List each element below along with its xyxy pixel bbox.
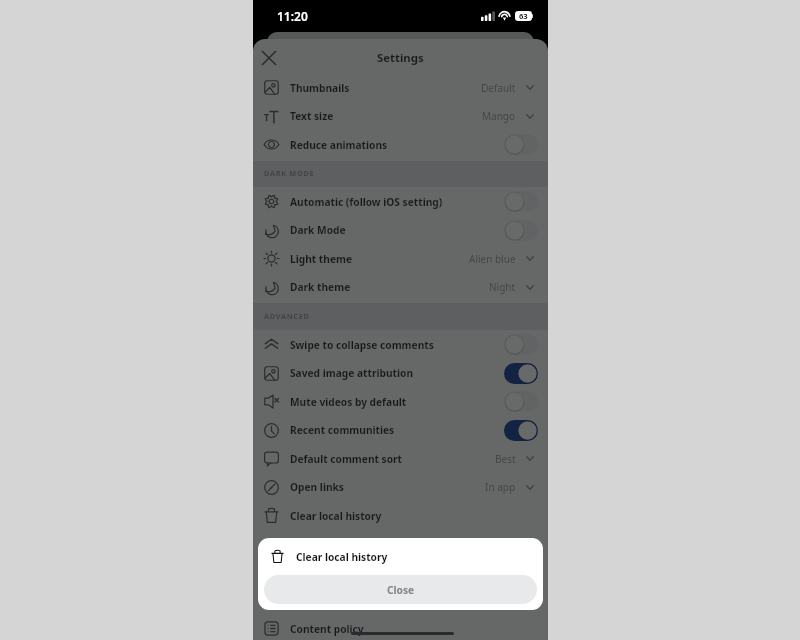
button[interactable]: Dark Mode xyxy=(253,216,548,244)
button[interactable]: Dark theme xyxy=(253,273,548,301)
staticText: Automatic (follow iOS setting) xyxy=(290,195,443,209)
button[interactable]: Recent communities xyxy=(253,416,548,444)
button[interactable]: On xyxy=(504,420,538,441)
staticText: Settings xyxy=(377,50,424,66)
staticText: In app xyxy=(485,480,516,494)
button[interactable]: Clear local history xyxy=(253,501,548,530)
button[interactable]: Thumbnails xyxy=(253,73,548,102)
staticText: Dark Mode xyxy=(290,223,346,237)
staticText: Best xyxy=(495,452,516,466)
staticText: Thumbnails xyxy=(290,81,350,95)
button[interactable]: Swipe to collapse comments xyxy=(253,330,548,359)
staticText: Text size xyxy=(290,109,334,123)
button[interactable]: Default comment sort xyxy=(253,444,548,473)
staticText: Mute videos by default xyxy=(290,395,407,409)
staticText: 11:20 xyxy=(277,8,308,24)
staticText: Mango xyxy=(482,109,516,123)
staticText: DARK MODE xyxy=(264,168,315,178)
staticText: Close xyxy=(387,583,415,597)
staticText: Dark theme xyxy=(290,280,351,294)
staticText: Default xyxy=(481,81,516,95)
staticText: Light theme xyxy=(290,252,353,266)
button[interactable]: Mute videos by default xyxy=(253,387,548,416)
staticText: Content policy xyxy=(290,622,364,636)
staticText: Night xyxy=(489,280,516,294)
button[interactable]: Automatic (follow iOS setting) xyxy=(253,187,548,216)
staticText: Clear local history xyxy=(296,550,388,564)
button[interactable]: Off xyxy=(504,391,538,412)
button[interactable]: Close xyxy=(256,45,282,71)
button[interactable]: Light theme xyxy=(253,244,548,273)
staticText: Recent communities xyxy=(290,423,395,437)
staticText: Clear local history xyxy=(290,509,382,523)
button[interactable]: Close xyxy=(264,575,537,604)
button[interactable]: Off xyxy=(504,334,538,355)
staticText: Swipe to collapse comments xyxy=(290,338,434,352)
staticText: Saved image attribution xyxy=(290,366,414,380)
button[interactable]: Off xyxy=(504,134,538,155)
button[interactable]: Content policy xyxy=(253,617,548,640)
button[interactable]: On xyxy=(504,363,538,384)
staticText: Open links xyxy=(290,480,344,494)
staticText: 63 xyxy=(519,11,528,21)
button[interactable]: Reduce animations xyxy=(253,130,548,159)
staticText: Default comment sort xyxy=(290,452,403,466)
button[interactable]: Open links xyxy=(253,473,548,501)
button[interactable]: Off xyxy=(504,191,538,212)
button[interactable]: Off xyxy=(504,220,538,241)
staticText: Reduce animations xyxy=(290,138,388,152)
button[interactable]: Saved image attribution xyxy=(253,359,548,387)
staticText: ADVANCED xyxy=(264,311,310,321)
button[interactable]: Text size xyxy=(253,102,548,130)
staticText: Alien blue xyxy=(469,252,516,266)
